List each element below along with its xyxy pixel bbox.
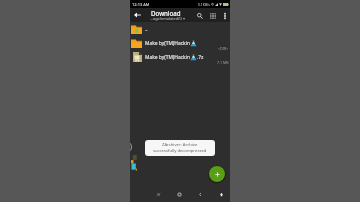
button[interactable]: Back xyxy=(130,8,144,22)
button[interactable]: Add xyxy=(208,165,226,183)
button[interactable]: Make by(TM)Hackin xyxy=(130,50,230,64)
staticText: .7z xyxy=(197,54,204,61)
button[interactable]: Make by(TM)Hackin xyxy=(130,36,230,50)
staticText: Download xyxy=(151,9,181,17)
button[interactable]: Search xyxy=(193,9,206,22)
staticText: Make by(TM)Hackin xyxy=(145,40,190,47)
button[interactable]: Recent apps xyxy=(151,187,165,201)
staticText: ...age/emulated/0 xyxy=(150,16,182,21)
button[interactable]: Home xyxy=(172,187,186,201)
staticText: 5.1KB/s xyxy=(198,2,210,7)
staticText: <DIR> xyxy=(218,46,229,51)
button[interactable]: Grid view xyxy=(206,9,219,22)
button[interactable]: .. xyxy=(130,22,230,36)
staticText: 7.1 MB xyxy=(217,60,229,65)
staticText: 12:13 AM xyxy=(132,2,150,7)
staticText: .. xyxy=(145,26,148,33)
staticText: Make by(TM)Hackin xyxy=(145,54,190,61)
button[interactable]: Hide keyboard xyxy=(214,187,228,201)
staticText: ZArchiver: Archive xyxy=(162,142,198,148)
button[interactable]: Back xyxy=(193,187,207,201)
button[interactable]: More options xyxy=(219,10,230,21)
staticText: successfully decompressed xyxy=(153,148,207,154)
